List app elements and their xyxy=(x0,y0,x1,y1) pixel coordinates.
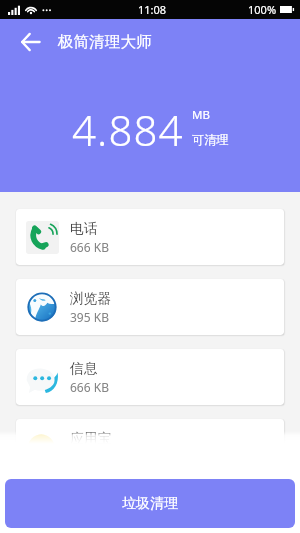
staticText: MB xyxy=(192,107,210,123)
staticText: 可清理 xyxy=(192,132,229,147)
staticText: 电话 xyxy=(70,220,98,237)
staticText: 浏览器 xyxy=(70,290,112,307)
button[interactable]: 应用宝 xyxy=(16,419,284,444)
staticText: 666 KB xyxy=(70,379,109,395)
staticText: 100% xyxy=(248,2,277,17)
button[interactable]: 信息 xyxy=(16,349,284,405)
staticText: 395 KB xyxy=(70,309,109,325)
staticText: 666 KB xyxy=(70,239,109,255)
staticText: 极简清理大师 xyxy=(58,32,152,52)
button[interactable]: 浏览器 xyxy=(16,279,284,335)
staticText: 信息 xyxy=(70,360,98,377)
staticText: 4.884 xyxy=(72,101,184,158)
staticText: 应用宝 xyxy=(70,430,112,444)
button[interactable]: Back xyxy=(7,19,53,65)
staticText: 垃圾清理 xyxy=(122,495,178,513)
staticText: 11:08 xyxy=(138,2,167,17)
button[interactable]: 电话 xyxy=(16,209,284,265)
button[interactable]: 垃圾清理 xyxy=(5,479,295,528)
